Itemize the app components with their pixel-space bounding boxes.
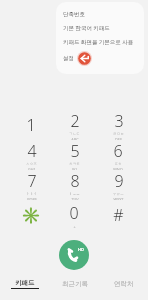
- staticText: #: [113, 204, 124, 226]
- staticText: 3: [114, 110, 124, 132]
- button[interactable]: 6: [97, 140, 139, 170]
- staticText: 설정: [63, 55, 74, 62]
- staticText: 9: [114, 170, 124, 192]
- staticText: TUV: [71, 197, 79, 200]
- staticText: ㅍㅎ: [114, 162, 122, 167]
- staticText: 4: [27, 140, 37, 162]
- staticText: +: [73, 224, 76, 229]
- staticText: ㅜㅠㅡ: [113, 192, 124, 197]
- staticText: 5: [70, 140, 80, 162]
- button[interactable]: 기본 한국어 키패드: [63, 21, 137, 35]
- staticText: 키패드: [15, 279, 35, 287]
- button[interactable]: 0: [53, 200, 95, 230]
- staticText: 최근기록: [62, 280, 88, 288]
- staticText: WXYZ: [113, 197, 124, 200]
- staticText: 2: [70, 110, 80, 132]
- button[interactable]: 5: [53, 140, 95, 170]
- staticText: MNO: [113, 167, 123, 170]
- button[interactable]: 9: [97, 170, 139, 200]
- button[interactable]: #: [97, 200, 139, 230]
- staticText: HD: [78, 247, 84, 252]
- button[interactable]: 전화 걸기: [59, 240, 89, 270]
- staticText: 키패드 화면을 기본으로 사용: [63, 38, 134, 46]
- staticText: 1: [26, 114, 36, 136]
- staticText: ㅅㅇㅈ: [26, 162, 37, 167]
- staticText: ㅏㅑㅓ: [26, 192, 37, 197]
- staticText: ㅊㅋㅌ: [69, 162, 80, 167]
- button[interactable]: 뒤로: [77, 51, 92, 66]
- button[interactable]: 설정: [63, 49, 137, 68]
- button[interactable]: 8: [53, 170, 95, 200]
- staticText: 8: [70, 170, 80, 192]
- staticText: 연락처: [114, 280, 134, 288]
- staticText: JKL: [72, 167, 78, 170]
- button[interactable]: 키패드: [0, 274, 50, 294]
- staticText: 0: [69, 202, 79, 224]
- button[interactable]: 최근기록: [50, 274, 99, 294]
- staticText: ㅕㅗㅛ: [69, 192, 80, 197]
- button[interactable]: 2: [53, 110, 95, 140]
- button[interactable]: 키패드 화면을 기본으로 사용: [63, 35, 137, 49]
- button[interactable]: ✳: [10, 200, 52, 230]
- staticText: GHI: [28, 167, 35, 170]
- staticText: 기본 한국어 키패드: [63, 24, 110, 32]
- button[interactable]: 7: [10, 170, 52, 200]
- staticText: PQRS: [27, 197, 37, 200]
- button[interactable]: 3: [97, 110, 139, 140]
- staticText: DEF: [115, 137, 122, 140]
- button[interactable]: 1: [10, 110, 52, 140]
- staticText: ABC: [71, 137, 79, 140]
- staticText: ✳: [21, 206, 41, 225]
- button[interactable]: 단축번호: [63, 8, 137, 21]
- button[interactable]: 4: [10, 140, 52, 170]
- staticText: 7: [27, 170, 37, 192]
- staticText: ㄹㅁㅂ: [113, 132, 124, 137]
- button[interactable]: 연락처: [99, 274, 148, 294]
- staticText: ㄱㄴㄷ: [69, 132, 80, 137]
- staticText: 6: [113, 140, 123, 162]
- staticText: 단축번호: [63, 11, 85, 18]
